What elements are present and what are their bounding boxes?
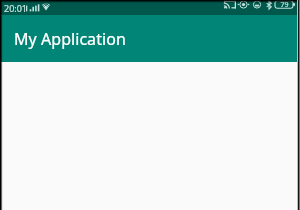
other: Bluetooth bbox=[266, 0, 272, 10]
other: Ringer mode bbox=[238, 0, 249, 9]
other: Do not disturb bbox=[252, 0, 262, 9]
staticText: My Application bbox=[14, 28, 126, 50]
staticText: 20:01 bbox=[4, 2, 28, 14]
button[interactable]: My Application bbox=[0, 15, 300, 62]
staticText: 79 bbox=[280, 0, 289, 9]
other: Cast bbox=[224, 0, 236, 9]
